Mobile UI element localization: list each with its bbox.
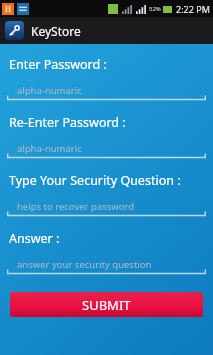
staticText: Enter Password : (9, 56, 107, 73)
staticText: answer your security question (17, 258, 152, 271)
staticText: SUBMIT (82, 296, 131, 314)
staticText: KeyStore (31, 23, 81, 39)
button[interactable]: alpha-numaric (7, 80, 206, 101)
button[interactable]: alpha-numaric (7, 138, 206, 159)
staticText: Re-Enter Password : (9, 114, 126, 131)
staticText: Answer : (9, 230, 60, 247)
button[interactable]: answer your security question (7, 254, 206, 275)
staticText: 52% (149, 5, 161, 13)
staticText: helps to recover password (17, 200, 135, 213)
button[interactable]: SUBMIT (10, 292, 203, 317)
staticText: alpha-numaric (17, 142, 82, 155)
staticText: 2:22 PM (176, 3, 210, 15)
staticText: alpha-numaric (17, 84, 82, 97)
staticText: Type Your Security Question : (9, 172, 181, 189)
button[interactable]: helps to recover password (7, 196, 206, 217)
